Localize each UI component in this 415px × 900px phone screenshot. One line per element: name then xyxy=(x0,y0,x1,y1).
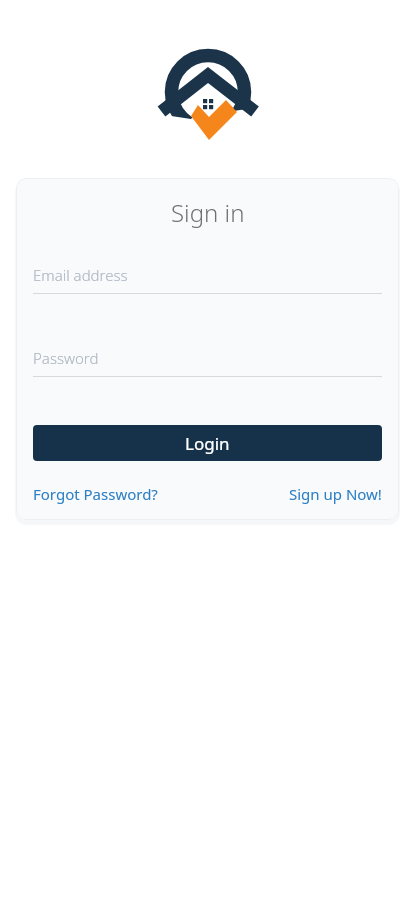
button[interactable]: Login xyxy=(33,425,382,461)
staticText: Forgot Password? xyxy=(33,484,158,504)
button[interactable]: Forgot Password? xyxy=(33,484,158,504)
staticText: Password xyxy=(33,348,99,368)
staticText: Sign in xyxy=(171,196,245,229)
button[interactable]: Sign up Now! xyxy=(289,484,382,504)
staticText: Sign up Now! xyxy=(289,484,382,504)
staticText: Login xyxy=(185,432,230,455)
staticText: Email address xyxy=(33,265,128,285)
